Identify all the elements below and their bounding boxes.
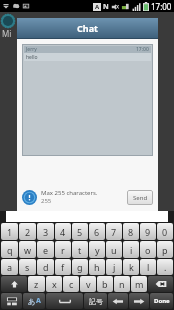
staticText: 255 <box>41 197 52 205</box>
button[interactable]: v <box>80 276 96 292</box>
button[interactable]: Shift <box>1 276 27 292</box>
staticText: 1 <box>7 226 13 238</box>
staticText: d <box>43 261 49 273</box>
staticText: 0 <box>162 226 168 238</box>
staticText: 17:00 <box>136 46 149 53</box>
staticText: Send <box>133 194 148 202</box>
button[interactable]: h <box>89 259 105 275</box>
staticText: hello <box>26 54 38 61</box>
staticText: q <box>7 244 13 256</box>
staticText: y <box>95 244 100 256</box>
staticText: r <box>61 244 65 256</box>
staticText: l <box>147 261 150 273</box>
staticText: w <box>24 244 32 256</box>
staticText: p <box>162 244 168 256</box>
staticText: 3 <box>43 226 49 238</box>
button[interactable]: g <box>72 259 88 275</box>
button[interactable]: 3 <box>37 223 54 240</box>
staticText: 5 <box>77 226 83 238</box>
button[interactable]: 8 <box>123 223 139 240</box>
staticText: Jerry <box>26 46 37 53</box>
button[interactable]: 2 <box>19 223 36 240</box>
staticText: 7 <box>111 226 117 238</box>
staticText: 6 <box>94 226 100 238</box>
staticText: a <box>7 261 13 273</box>
staticText: n <box>119 278 125 290</box>
staticText: c <box>69 278 74 290</box>
staticText: g <box>77 261 83 273</box>
button[interactable]: b <box>97 276 113 292</box>
button[interactable]: Keyboard settings <box>1 293 22 309</box>
staticText: 8 <box>128 226 134 238</box>
button[interactable]: 6 <box>89 223 105 240</box>
button[interactable]: a <box>1 259 18 275</box>
button[interactable]: Space <box>46 293 83 309</box>
button[interactable]: Send <box>127 190 153 205</box>
button[interactable]: Left <box>108 293 128 309</box>
button[interactable]: 7 <box>106 223 122 240</box>
button[interactable]: t <box>72 241 88 258</box>
button[interactable]: 1 <box>1 223 18 240</box>
button[interactable]: s <box>19 259 36 275</box>
staticText: z <box>34 278 39 290</box>
staticText: h <box>94 261 100 273</box>
button[interactable]: 0 <box>157 223 173 240</box>
button[interactable]: r <box>55 241 71 258</box>
button[interactable]: e <box>37 241 54 258</box>
staticText: v <box>86 278 91 290</box>
staticText: t <box>78 244 82 256</box>
staticText: Chat <box>77 22 98 34</box>
button[interactable]: 9 <box>140 223 156 240</box>
staticText: e <box>43 244 49 256</box>
button[interactable]: Backspace <box>148 276 173 292</box>
staticText: u <box>111 244 117 256</box>
button[interactable]: k <box>123 259 139 275</box>
staticText: b <box>102 278 108 290</box>
button[interactable]: n <box>114 276 130 292</box>
button[interactable]: m <box>131 276 147 292</box>
button[interactable]: u <box>106 241 122 258</box>
staticText: x <box>52 278 57 290</box>
button[interactable]: q <box>1 241 18 258</box>
button[interactable]: i <box>123 241 139 258</box>
staticText: k <box>129 261 134 273</box>
staticText: Mi <box>2 28 12 39</box>
staticText: Max 255 characters. <box>41 189 98 197</box>
button[interactable]: z <box>28 276 45 292</box>
button[interactable]: Symbols <box>84 293 107 309</box>
staticText: i <box>130 244 133 256</box>
button[interactable]: 4 <box>55 223 71 240</box>
button[interactable]: Done <box>150 293 173 309</box>
staticText: A <box>36 296 41 306</box>
button[interactable]: . <box>157 259 173 275</box>
staticText: N <box>103 2 109 12</box>
button[interactable]: Information <box>22 190 37 205</box>
staticText: j <box>113 261 116 273</box>
button[interactable]: y <box>89 241 105 258</box>
staticText: f <box>61 261 65 273</box>
staticText: 2 <box>25 226 31 238</box>
staticText: 4 <box>60 226 66 238</box>
button[interactable]: o <box>140 241 156 258</box>
button[interactable]: c <box>63 276 79 292</box>
button[interactable]: p <box>157 241 173 258</box>
staticText: o <box>145 244 151 256</box>
staticText: 9 <box>145 226 151 238</box>
button[interactable]: l <box>140 259 156 275</box>
button[interactable]: w <box>19 241 36 258</box>
staticText: 17:00 <box>151 1 172 12</box>
staticText: A <box>95 3 100 11</box>
staticText: s <box>25 261 30 273</box>
button[interactable]: x <box>46 276 62 292</box>
staticText: . <box>164 261 167 273</box>
button[interactable]: Input language <box>23 293 45 309</box>
button[interactable]: j <box>106 259 122 275</box>
button[interactable]: Right <box>129 293 149 309</box>
button[interactable]: d <box>37 259 54 275</box>
staticText: Done <box>154 297 170 305</box>
button[interactable]: f <box>55 259 71 275</box>
button[interactable]: 5 <box>72 223 88 240</box>
staticText: m <box>135 278 144 290</box>
staticText: あ <box>28 297 36 306</box>
staticText: 記号 <box>89 297 103 306</box>
